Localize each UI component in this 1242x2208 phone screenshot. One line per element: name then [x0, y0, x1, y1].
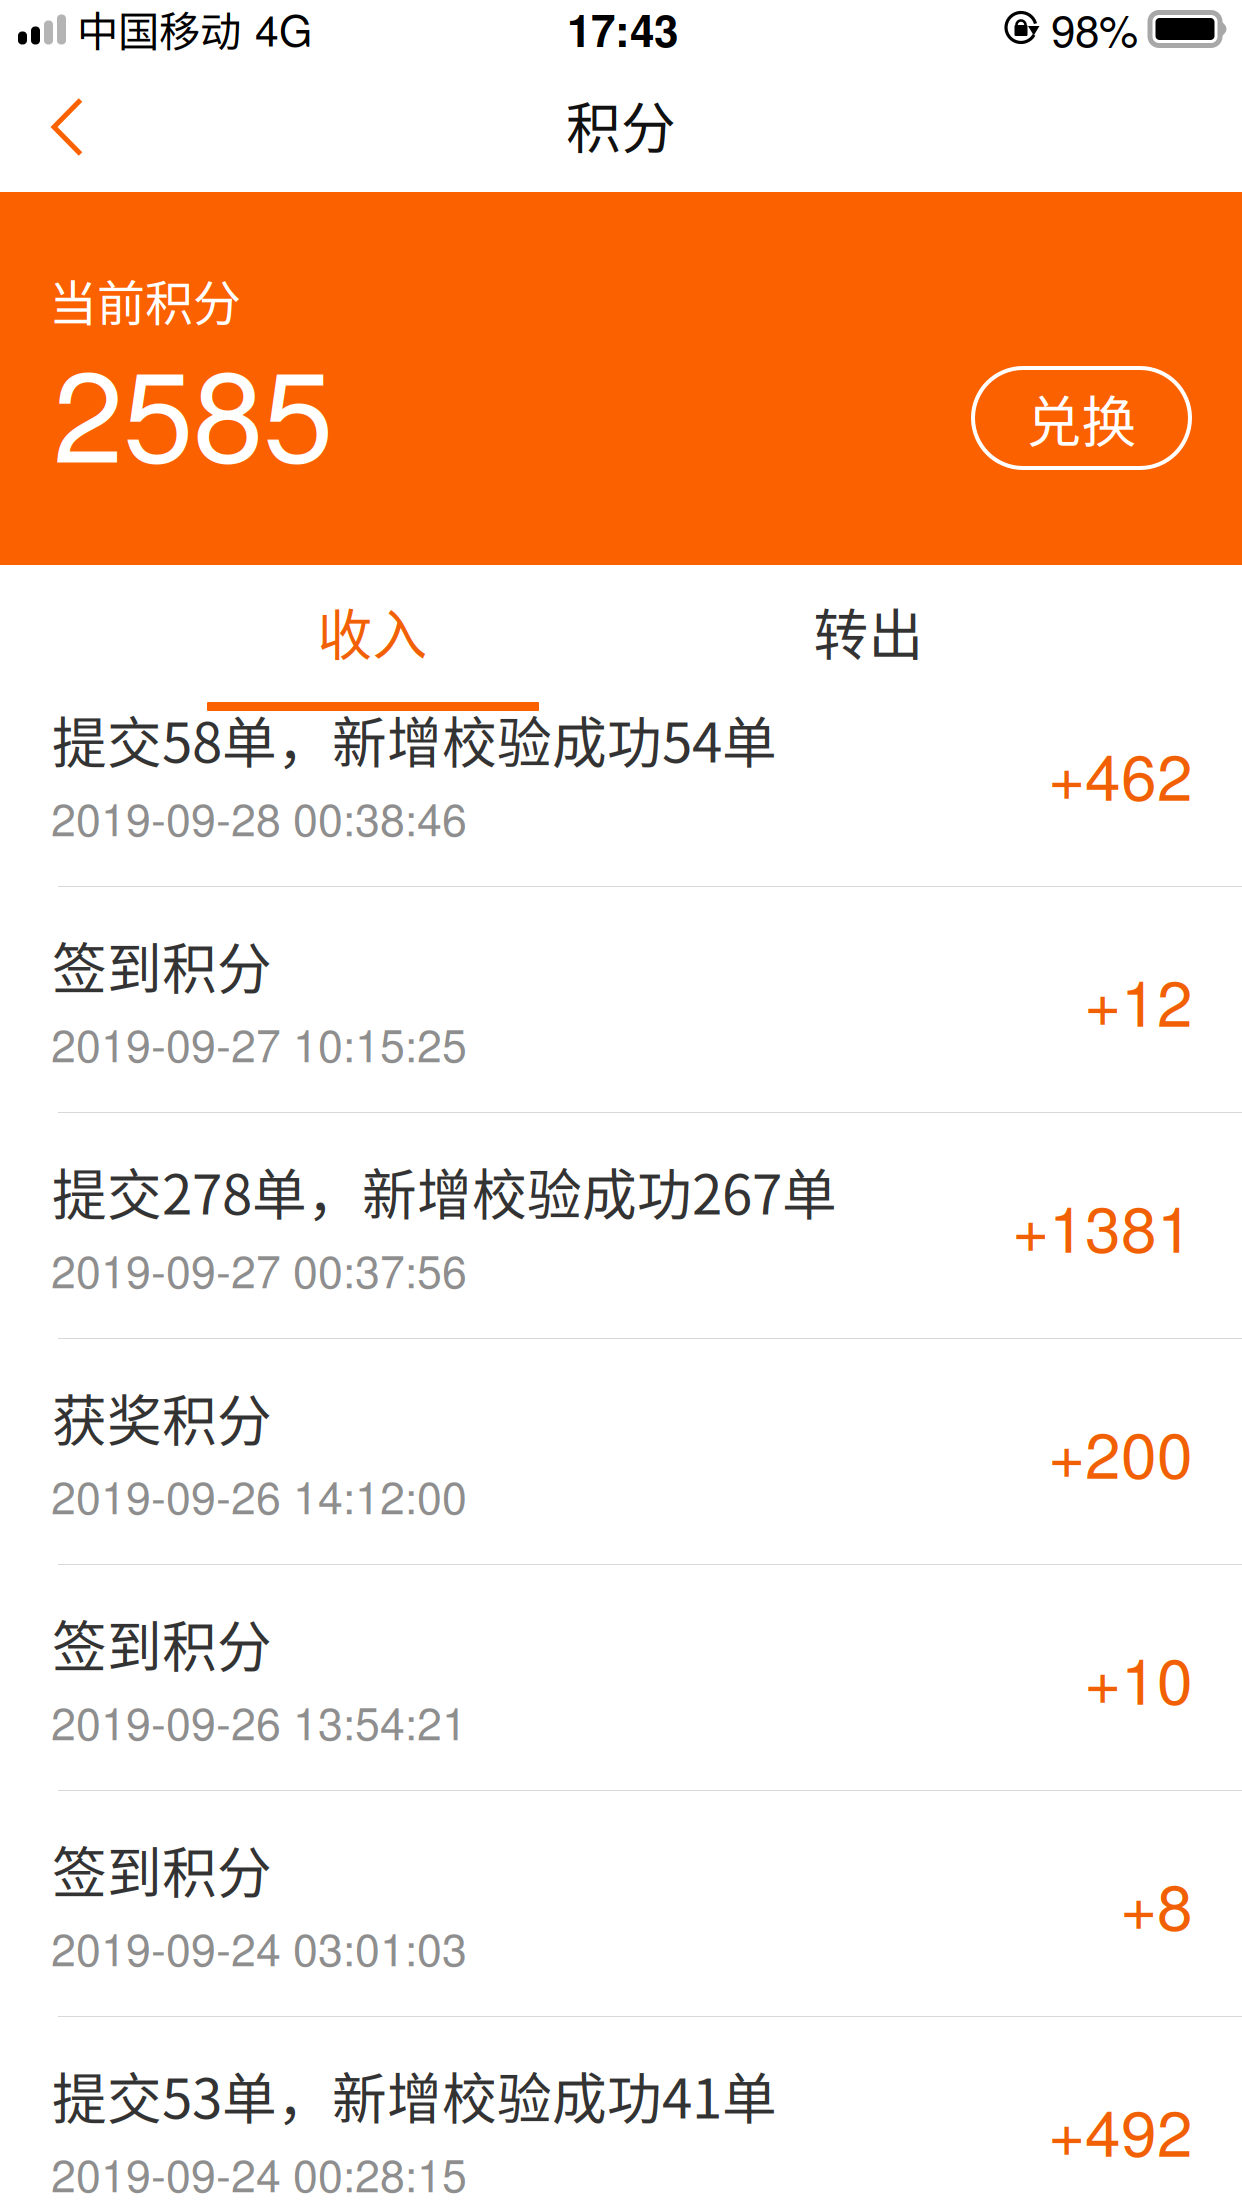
staticText: 98%: [1051, 0, 1138, 59]
staticText: 获奖积分: [52, 1377, 272, 1456]
staticText: 收入: [317, 591, 427, 671]
button[interactable]: 转出: [620, 583, 1117, 679]
staticText: +200: [1048, 1405, 1193, 1497]
button[interactable]: 签到积分: [0, 1791, 1242, 2017]
button[interactable]: 签到积分: [0, 887, 1242, 1113]
staticText: 兑换: [1026, 378, 1136, 458]
staticText: 当前积分: [49, 265, 241, 334]
staticText: 提交53单，新增校验成功41单: [52, 2055, 777, 2134]
staticText: 4G: [255, 0, 312, 59]
staticText: 提交278单，新增校验成功267单: [52, 1151, 837, 1230]
staticText: 2585: [53, 317, 333, 498]
staticText: 转出: [813, 591, 923, 671]
staticText: +462: [1048, 727, 1193, 819]
button[interactable]: 收入: [124, 583, 621, 679]
staticText: +10: [1084, 1631, 1193, 1723]
staticText: 2019-09-26 13:54:21: [51, 1689, 467, 1753]
staticText: +12: [1084, 953, 1193, 1045]
staticText: 2019-09-26 14:12:00: [51, 1463, 467, 1527]
staticText: 提交58单，新增校验成功54单: [52, 699, 777, 778]
button[interactable]: 返回: [0, 62, 134, 192]
button[interactable]: 提交58单，新增校验成功54单: [0, 661, 1242, 887]
staticText: 签到积分: [52, 925, 272, 1004]
staticText: 17:43: [567, 0, 678, 60]
staticText: 2019-09-27 10:15:25: [51, 1011, 467, 1075]
staticText: 签到积分: [52, 1603, 272, 1682]
staticText: 2019-09-24 00:28:15: [51, 2141, 467, 2205]
button[interactable]: 获奖积分: [0, 1339, 1242, 1565]
button[interactable]: 签到积分: [0, 1565, 1242, 1791]
staticText: 2019-09-24 03:01:03: [51, 1915, 467, 1979]
staticText: +492: [1048, 2083, 1193, 2175]
staticText: 2019-09-27 00:37:56: [51, 1237, 467, 1301]
staticText: +1381: [1012, 1179, 1193, 1271]
staticText: 积分: [566, 84, 676, 164]
staticText: +8: [1120, 1857, 1193, 1949]
staticText: 中国移动: [77, 0, 241, 58]
button[interactable]: 提交278单，新增校验成功267单: [0, 1113, 1242, 1339]
staticText: 签到积分: [52, 1829, 272, 1908]
button[interactable]: 兑换: [973, 368, 1190, 468]
staticText: 2019-09-28 00:38:46: [51, 785, 467, 849]
button[interactable]: 提交53单，新增校验成功41单: [0, 2017, 1242, 2208]
